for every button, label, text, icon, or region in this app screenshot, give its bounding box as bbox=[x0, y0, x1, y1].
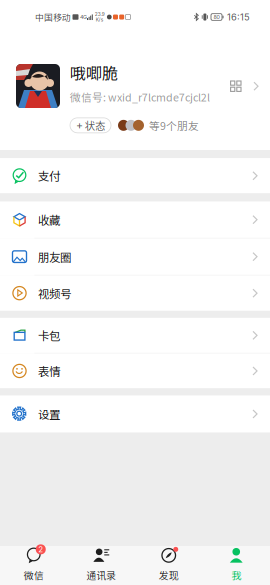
staticText: 卡包 bbox=[38, 327, 60, 344]
button[interactable]: 表情 bbox=[0, 353, 270, 388]
button[interactable]: 支付 bbox=[0, 158, 270, 193]
staticText: 等9个朋友 bbox=[149, 118, 199, 133]
staticText: 通讯录 bbox=[86, 568, 116, 582]
staticText: 收藏 bbox=[38, 211, 60, 228]
staticText: 设置 bbox=[38, 406, 60, 422]
staticText: 表情 bbox=[38, 363, 60, 379]
staticText: 4G bbox=[80, 14, 87, 20]
staticText: 16:15 bbox=[227, 11, 250, 23]
staticText: 朋友圈 bbox=[38, 248, 71, 265]
staticText: 2 bbox=[38, 544, 43, 554]
button[interactable]: 发现 bbox=[135, 546, 202, 585]
staticText: 中国移动 bbox=[35, 11, 71, 23]
staticText: 我 bbox=[231, 568, 241, 582]
button[interactable]: 哦唧脆 bbox=[0, 34, 270, 150]
button[interactable]: 视频号 bbox=[0, 275, 270, 311]
staticText: 哦唧脆 bbox=[70, 61, 118, 84]
button[interactable]: 通讯录 bbox=[67, 546, 135, 585]
staticText: 80 bbox=[213, 14, 219, 20]
button[interactable]: 卡包 bbox=[0, 318, 270, 353]
staticText: 视频号 bbox=[38, 285, 71, 301]
staticText: + bbox=[76, 119, 83, 132]
button[interactable]: 设置 bbox=[0, 395, 270, 432]
button[interactable]: 收藏 bbox=[0, 201, 270, 238]
staticText: 微信号: wxid_r7lcmde7cjcl2l bbox=[70, 89, 210, 105]
staticText: 状态 bbox=[85, 118, 105, 133]
button[interactable]: 我 bbox=[202, 546, 270, 585]
staticText: K/s bbox=[96, 17, 104, 23]
staticText: 23.9 bbox=[95, 11, 105, 17]
staticText: 发现 bbox=[159, 568, 179, 582]
button[interactable]: 朋友圈 bbox=[0, 238, 270, 275]
button[interactable]: 2 bbox=[0, 546, 67, 585]
staticText: 支付 bbox=[38, 167, 60, 184]
staticText: 微信 bbox=[24, 568, 44, 582]
